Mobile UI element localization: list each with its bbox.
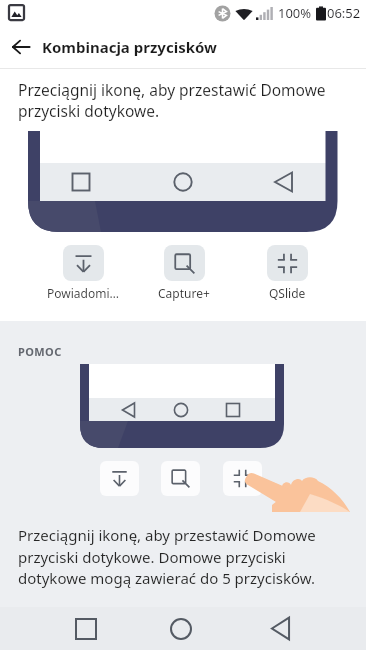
staticText: Capture+ (158, 285, 210, 301)
staticText: Przeciągnij ikonę, aby przestawić Domowe… (18, 525, 318, 588)
staticText: QSlide (269, 285, 306, 301)
button[interactable] (161, 461, 200, 496)
staticText: Powiadomi… (47, 285, 119, 301)
button[interactable]: Capture+ (134, 245, 234, 301)
button[interactable]: Back (250, 607, 310, 650)
button[interactable]: Home (151, 607, 211, 650)
button[interactable]: QSlide (237, 245, 337, 301)
staticText: 06:52 (327, 4, 361, 22)
button[interactable] (223, 461, 262, 496)
staticText: Kombinacja przycisków (42, 37, 217, 57)
button[interactable]: Back (0, 26, 42, 68)
staticText: POMOC (18, 344, 62, 359)
button[interactable]: Powiadomi… (33, 245, 133, 301)
button[interactable] (100, 461, 139, 496)
staticText: 100% (278, 4, 312, 22)
staticText: Przeciągnij ikonę, aby przestawić Domowe… (18, 79, 336, 122)
button[interactable]: Recent apps (56, 607, 116, 650)
